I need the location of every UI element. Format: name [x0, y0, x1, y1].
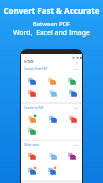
- button[interactable]: More options: [74, 60, 79, 65]
- staticText: More: [73, 68, 79, 71]
- button[interactable]: PDF Merge: [46, 152, 59, 163]
- button[interactable]: PDF Decrypt: [45, 167, 59, 178]
- button[interactable]: PDF Split: [67, 152, 77, 163]
- button[interactable]: PPT to PDF: [66, 115, 79, 126]
- button[interactable]: PDF to Image: [44, 77, 60, 88]
- button[interactable]: Image to PDF: [24, 115, 40, 126]
- button[interactable]: HOME: [24, 59, 79, 65]
- button[interactable]: PDF to Excel: [65, 77, 79, 88]
- staticText: More: [73, 107, 79, 110]
- staticText: Convert Fast & Accurate: [0, 5, 103, 16]
- button[interactable]: Other tools: [24, 142, 79, 148]
- staticText: Convert from PDF: [24, 67, 48, 71]
- button[interactable]: PDF to Word: [24, 77, 39, 88]
- button[interactable]: PDF to PPT: [25, 89, 38, 100]
- button[interactable]: PDF Encrypt: [25, 167, 39, 178]
- staticText: More: [73, 144, 79, 147]
- button[interactable]: PDF to HTML: [65, 89, 80, 100]
- button[interactable]: PDF Reader: [25, 152, 39, 163]
- button[interactable]: Excel to PDF: [25, 127, 39, 138]
- button[interactable]: Convert from PDF: [24, 66, 79, 72]
- staticText: Convert to PDF: [24, 106, 44, 110]
- staticText: Other tools: [24, 143, 39, 147]
- staticText: HOME: [24, 60, 34, 64]
- staticText: Between PDF: [0, 20, 103, 28]
- button[interactable]: Word to PDF: [45, 115, 60, 126]
- button[interactable]: PDF to Text: [46, 89, 59, 100]
- staticText: Word, Excel and Image: [0, 28, 103, 38]
- button[interactable]: Convert to PDF: [24, 105, 79, 111]
